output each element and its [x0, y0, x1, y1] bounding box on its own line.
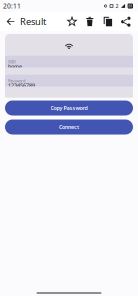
- button[interactable]: Favourite: [63, 12, 81, 31]
- button[interactable]: Share: [117, 12, 135, 31]
- staticText: 81: [128, 3, 132, 9]
- button[interactable]: Copy: [99, 12, 117, 31]
- button[interactable]: Delete: [81, 12, 99, 31]
- button[interactable]: Connect: [5, 119, 133, 134]
- button[interactable]: Back: [4, 12, 17, 31]
- staticText: 2: [116, 2, 119, 10]
- staticText: 123456789: [8, 82, 35, 89]
- staticText: Copy Password: [50, 104, 87, 112]
- staticText: Result: [20, 15, 46, 28]
- staticText: Connect: [59, 123, 79, 131]
- staticText: 20:11: [3, 2, 21, 10]
- button[interactable]: Copy Password: [5, 100, 133, 115]
- staticText: home: [8, 63, 22, 70]
- staticText: SSID: [8, 59, 16, 64]
- staticText: Password: [8, 78, 25, 83]
